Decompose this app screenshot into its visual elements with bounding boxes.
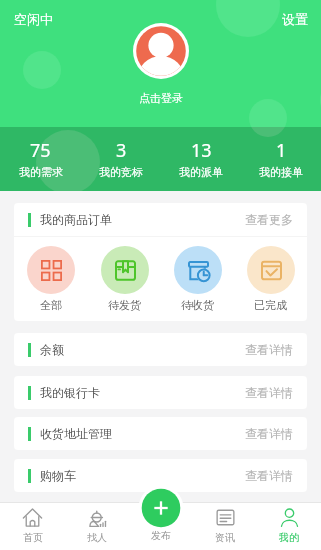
staticText: 购物车	[40, 468, 76, 483]
staticText: 已完成	[254, 298, 287, 312]
button[interactable]: 找人	[65, 502, 129, 550]
staticText: 查看更多	[245, 212, 293, 227]
button[interactable]: 3	[81, 138, 161, 179]
staticText: 我的商品订单	[40, 212, 112, 227]
button[interactable]: 75	[0, 138, 81, 179]
button[interactable]: 首页	[0, 502, 65, 550]
button[interactable]: 设置	[282, 11, 308, 27]
staticText: 待收货	[181, 298, 214, 312]
staticText: 余额	[40, 342, 64, 357]
button[interactable]: 13	[161, 138, 241, 179]
button[interactable]: 我的银行卡	[14, 376, 307, 409]
staticText: 1	[276, 138, 287, 163]
button[interactable]: 购物车	[14, 459, 307, 492]
staticText: 首页	[23, 531, 43, 544]
button[interactable]: 点击登录	[132, 22, 190, 80]
button[interactable]: 我的商品订单	[14, 203, 307, 236]
staticText: 收货地址管理	[40, 426, 112, 441]
button[interactable]: 余额	[14, 333, 307, 366]
staticText: 75	[30, 138, 51, 163]
staticText: 查看详情	[245, 426, 293, 441]
button[interactable]: 待发货	[88, 246, 161, 312]
staticText: 我的接单	[259, 165, 303, 179]
button[interactable]: 待收货	[161, 246, 234, 312]
button[interactable]: 收货地址管理	[14, 417, 307, 450]
staticText: 全部	[40, 298, 62, 312]
button[interactable]: 已完成	[234, 246, 307, 312]
staticText: 我的需求	[19, 165, 63, 179]
staticText: 我的银行卡	[40, 385, 100, 400]
staticText: 找人	[87, 531, 107, 544]
button[interactable]: 我的	[257, 502, 321, 550]
staticText: 发布	[151, 529, 171, 542]
button[interactable]: 发布	[138, 485, 184, 531]
staticText: 我的派单	[179, 165, 223, 179]
staticText: 查看详情	[245, 385, 293, 400]
staticText: 空闲中	[14, 11, 53, 27]
button[interactable]: 全部	[14, 246, 88, 312]
button[interactable]: 1	[241, 138, 321, 179]
staticText: 我的	[279, 531, 299, 544]
staticText: 查看详情	[245, 342, 293, 357]
staticText: 查看详情	[245, 468, 293, 483]
staticText: 我的竞标	[99, 165, 143, 179]
button[interactable]: 资讯	[193, 502, 257, 550]
staticText: 资讯	[215, 531, 235, 544]
staticText: 待发货	[108, 298, 141, 312]
staticText: 点击登录	[139, 91, 183, 105]
staticText: 13	[191, 138, 212, 163]
staticText: 3	[116, 138, 127, 163]
